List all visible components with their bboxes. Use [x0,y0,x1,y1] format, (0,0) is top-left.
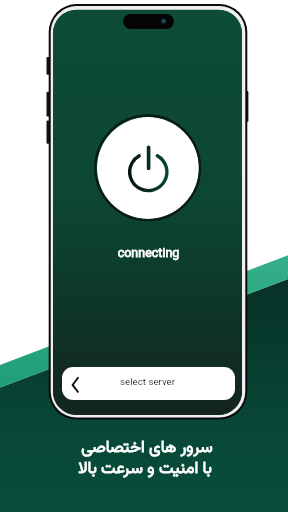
staticText: با امنیت و سرعت بالا [1,456,288,482]
staticText: connecting [54,244,242,264]
button[interactable]: select server [62,367,235,400]
staticText: select server [120,375,176,390]
button[interactable]: Power [97,117,199,219]
staticText: سرور های اختصاصی [3,435,288,461]
